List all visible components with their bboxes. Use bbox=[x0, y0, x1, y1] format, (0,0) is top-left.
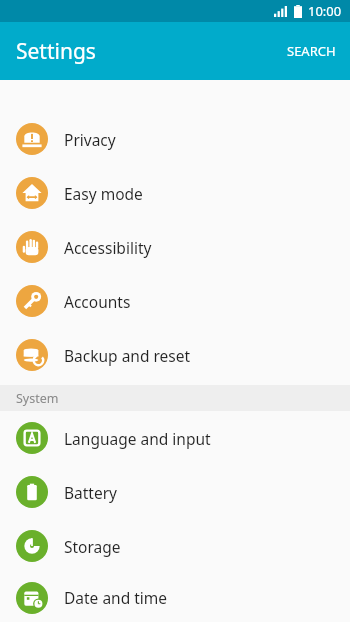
staticText: 10:00 bbox=[308, 2, 342, 20]
staticText: Language and input bbox=[64, 428, 211, 449]
staticText: Battery bbox=[64, 482, 118, 503]
staticText: Storage bbox=[64, 536, 121, 557]
staticText: Date and time bbox=[64, 587, 168, 608]
staticText: Backup and reset bbox=[64, 345, 191, 366]
button[interactable]: Accounts bbox=[0, 274, 350, 328]
button[interactable]: Battery bbox=[0, 465, 350, 519]
button[interactable]: Easy mode bbox=[0, 166, 350, 220]
staticText: System bbox=[16, 390, 59, 407]
button[interactable]: Date and time bbox=[0, 573, 350, 622]
button[interactable]: Privacy bbox=[0, 112, 350, 166]
staticText: Easy mode bbox=[64, 183, 143, 204]
button[interactable]: Backup and reset bbox=[0, 328, 350, 382]
staticText: Accounts bbox=[64, 291, 131, 312]
button[interactable]: Storage bbox=[0, 519, 350, 573]
staticText: Privacy bbox=[64, 129, 116, 150]
staticText: Accessibility bbox=[64, 237, 152, 258]
button[interactable]: SEARCH bbox=[273, 22, 350, 80]
staticText: Settings bbox=[16, 37, 96, 66]
staticText: SEARCH bbox=[287, 42, 336, 60]
button[interactable]: Accessibility bbox=[0, 220, 350, 274]
button[interactable]: Language and input bbox=[0, 411, 350, 465]
